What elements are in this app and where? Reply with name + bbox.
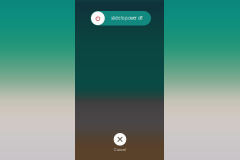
staticText: Cancel (114, 148, 126, 152)
staticText: slide to power off (111, 16, 143, 21)
button[interactable]: Cancel (114, 133, 126, 152)
button[interactable]: slide to power off (90, 11, 151, 25)
